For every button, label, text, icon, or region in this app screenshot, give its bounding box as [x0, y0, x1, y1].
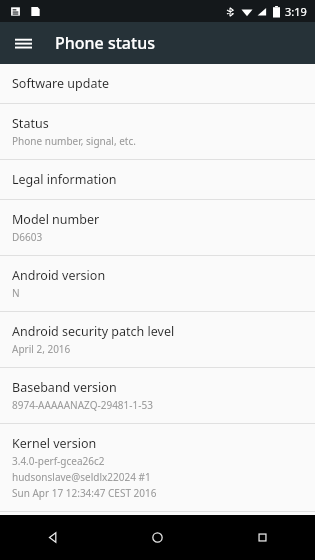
button[interactable]: Legal information: [0, 160, 315, 199]
staticText: Phone number, signal, etc.: [12, 134, 136, 148]
staticText: Phone status: [55, 32, 155, 54]
staticText: 3:19: [285, 4, 307, 19]
button[interactable]: Baseband version: [0, 368, 315, 423]
staticText: Android version: [12, 267, 106, 284]
staticText: Android security patch level: [12, 323, 175, 340]
staticText: Kernel version: [12, 435, 97, 452]
button[interactable]: Model number: [0, 200, 315, 255]
button[interactable]: Back: [0, 515, 105, 560]
staticText: 3.4.0-perf-gcea26c2: [12, 454, 105, 468]
staticText: Sun Apr 17 12:34:47 CEST 2016: [12, 486, 157, 500]
button[interactable]: Android security patch level: [0, 312, 315, 367]
staticText: April 2, 2016: [12, 342, 71, 356]
button[interactable]: Open navigation menu: [8, 28, 38, 58]
button[interactable]: Kernel version: [0, 424, 315, 511]
button[interactable]: Home: [105, 515, 210, 560]
staticText: Legal information: [12, 171, 117, 188]
staticText: Model number: [12, 211, 100, 228]
button[interactable]: Recent apps: [210, 515, 315, 560]
staticText: N: [12, 286, 20, 300]
staticText: hudsonslave@seldlx22024 #1: [12, 470, 151, 484]
button[interactable]: Android version: [0, 256, 315, 311]
staticText: D6603: [12, 230, 43, 244]
staticText: 8974-AAAAANAZQ-29481-1-53: [12, 398, 153, 412]
staticText: Status: [12, 115, 49, 132]
button[interactable]: Status: [0, 104, 315, 159]
staticText: Baseband version: [12, 379, 117, 396]
staticText: Software update: [12, 75, 109, 92]
button[interactable]: Software update: [0, 64, 315, 103]
